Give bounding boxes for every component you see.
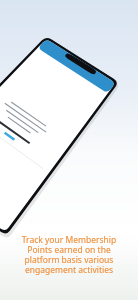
- staticText: Track your Membership Points earned on t…: [9, 234, 129, 276]
